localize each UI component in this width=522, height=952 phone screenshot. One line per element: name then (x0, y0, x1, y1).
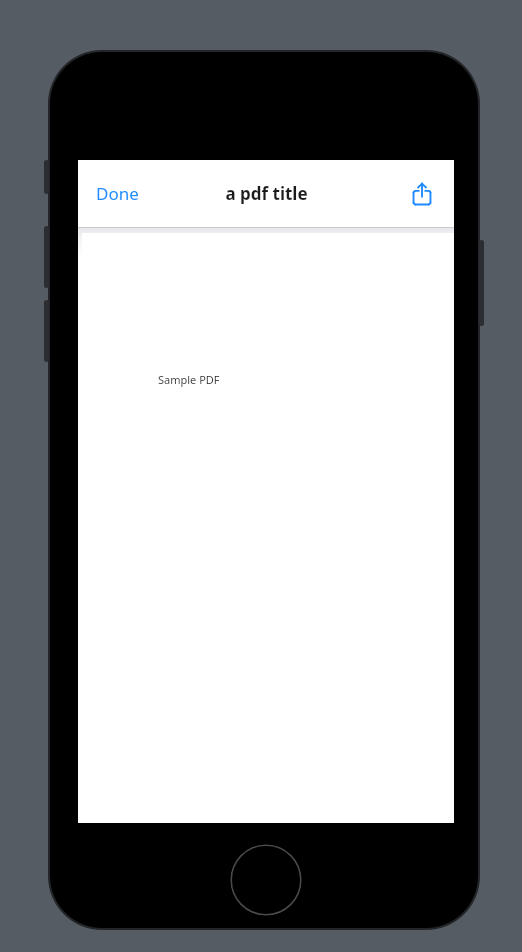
other: Power (479, 240, 484, 326)
other: Volume up (44, 226, 49, 288)
other: Silent switch (44, 160, 49, 194)
other: Volume down (44, 300, 49, 362)
staticText: Done (96, 182, 139, 205)
button[interactable]: Share (402, 174, 442, 214)
staticText: Sample PDF (158, 372, 220, 387)
button[interactable]: Done (88, 176, 147, 211)
button[interactable]: Home (230, 844, 302, 916)
staticText: a pdf title (225, 182, 308, 205)
